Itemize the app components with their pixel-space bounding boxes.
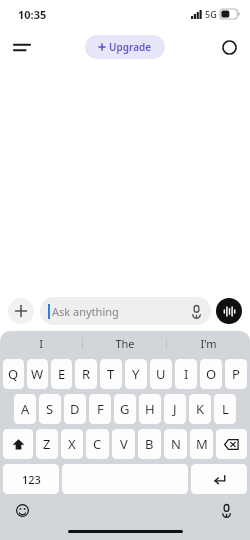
staticText: C: [93, 435, 102, 453]
staticText: Q: [8, 365, 19, 383]
button[interactable]: Shift: [3, 429, 33, 459]
button[interactable]: Add attachment: [8, 298, 34, 324]
staticText: Z: [43, 435, 51, 453]
staticText: F: [97, 400, 104, 418]
staticText: 10:35: [18, 7, 47, 22]
button[interactable]: I: [0, 331, 82, 356]
staticText: Upgrade: [109, 40, 152, 54]
button[interactable]: Menu: [6, 31, 38, 63]
button[interactable]: L: [214, 394, 236, 424]
staticText: W: [31, 365, 44, 383]
staticText: M: [196, 435, 208, 453]
button[interactable]: D: [64, 394, 86, 424]
button[interactable]: C: [86, 429, 109, 459]
button[interactable]: E: [51, 359, 72, 389]
button[interactable]: R: [75, 359, 97, 389]
button[interactable]: Z: [36, 429, 58, 459]
staticText: L: [222, 400, 229, 418]
button[interactable]: B: [138, 429, 161, 459]
button[interactable]: J: [164, 394, 186, 424]
staticText: A: [21, 400, 30, 418]
staticText: J: [173, 400, 177, 418]
button[interactable]: The: [83, 331, 166, 356]
button[interactable]: Voice typing: [216, 500, 236, 520]
staticText: V: [120, 435, 128, 453]
staticText: D: [70, 400, 80, 418]
staticText: R: [82, 365, 91, 383]
button[interactable]: H: [139, 394, 161, 424]
button[interactable]: P: [225, 359, 247, 389]
staticText: T: [107, 365, 115, 383]
button[interactable]: X: [61, 429, 83, 459]
staticText: S: [46, 400, 54, 418]
staticText: E: [58, 365, 66, 383]
button[interactable]: Y: [125, 359, 147, 389]
staticText: Y: [132, 365, 140, 383]
button[interactable]: S: [39, 394, 61, 424]
button[interactable]: 123: [3, 464, 59, 494]
staticText: N: [171, 435, 181, 453]
button[interactable]: Voice mode: [216, 298, 242, 324]
button[interactable]: F: [89, 394, 111, 424]
button[interactable]: N: [164, 429, 187, 459]
button[interactable]: M: [190, 429, 213, 459]
button[interactable]: A: [14, 394, 36, 424]
button[interactable]: Backspace: [216, 429, 247, 459]
button[interactable]: Emoji: [12, 500, 32, 520]
button[interactable]: G: [114, 394, 136, 424]
staticText: P: [232, 365, 240, 383]
button[interactable]: I'm: [167, 331, 250, 356]
button[interactable]: T: [100, 359, 122, 389]
button[interactable]: New chat: [214, 32, 244, 62]
staticText: X: [68, 435, 76, 453]
staticText: I: [184, 365, 189, 383]
staticText: I: [39, 336, 43, 351]
button[interactable]: Enter: [191, 464, 247, 494]
button[interactable]: V: [112, 429, 135, 459]
button[interactable]: O: [200, 359, 222, 389]
button[interactable]: Voice input: [187, 302, 205, 320]
button[interactable]: I: [175, 359, 197, 389]
button[interactable]: Upgrade: [85, 35, 165, 59]
button[interactable]: W: [27, 359, 48, 389]
staticText: G: [120, 400, 130, 418]
button[interactable]: U: [150, 359, 172, 389]
button[interactable]: Q: [3, 359, 24, 389]
staticText: The: [115, 336, 135, 351]
staticText: O: [206, 365, 217, 383]
button[interactable]: Ask anything: [40, 297, 211, 325]
staticText: K: [196, 400, 205, 418]
staticText: U: [156, 365, 166, 383]
staticText: Ask anything: [52, 304, 119, 319]
staticText: H: [145, 400, 155, 418]
staticText: 5G: [205, 8, 217, 20]
staticText: I'm: [200, 336, 217, 351]
staticText: B: [145, 435, 154, 453]
button[interactable]: K: [189, 394, 211, 424]
staticText: 123: [22, 472, 41, 487]
